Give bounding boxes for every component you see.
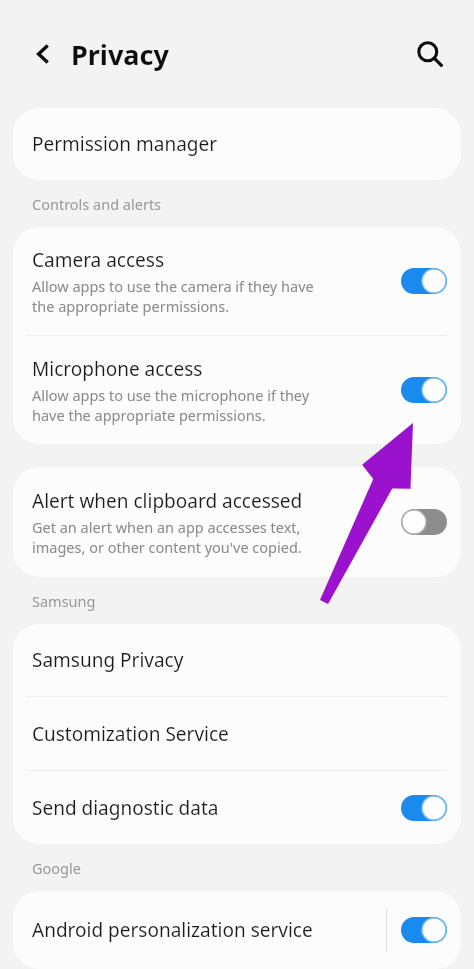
- button[interactable]: Customization Service: [13, 697, 461, 770]
- button[interactable]: Android personalization service: [13, 891, 461, 969]
- staticText: Controls and alerts: [32, 194, 162, 214]
- button[interactable]: Alert when clipboard accessed: [13, 467, 461, 577]
- staticText: Samsung Privacy: [32, 647, 184, 673]
- button[interactable]: Camera access: [387, 227, 461, 335]
- button[interactable]: Alert when clipboard accessed: [387, 467, 461, 577]
- staticText: Allow apps to use the microphone if they…: [32, 385, 310, 425]
- button[interactable]: Search: [407, 31, 453, 77]
- button[interactable]: Samsung Privacy: [13, 624, 461, 696]
- button[interactable]: Permission manager: [13, 108, 461, 180]
- staticText: Samsung: [32, 591, 96, 611]
- button[interactable]: Camera access: [13, 227, 461, 335]
- staticText: Get an alert when an app accesses text, …: [32, 517, 302, 557]
- button[interactable]: Send diagnostic data: [13, 771, 461, 844]
- staticText: Microphone access: [32, 356, 203, 382]
- staticText: Send diagnostic data: [32, 795, 219, 821]
- button[interactable]: Android personalization service: [387, 891, 461, 969]
- staticText: Allow apps to use the camera if they hav…: [32, 276, 314, 316]
- staticText: Privacy: [71, 36, 169, 73]
- staticText: Camera access: [32, 247, 165, 273]
- button[interactable]: Microphone access: [387, 336, 461, 444]
- button[interactable]: Back: [20, 31, 66, 77]
- button[interactable]: Send diagnostic data: [387, 771, 461, 844]
- staticText: Alert when clipboard accessed: [32, 488, 303, 514]
- staticText: Google: [32, 858, 81, 878]
- staticText: Android personalization service: [32, 917, 313, 943]
- button[interactable]: Microphone access: [13, 336, 461, 444]
- staticText: Customization Service: [32, 721, 229, 747]
- staticText: Permission manager: [32, 131, 218, 157]
